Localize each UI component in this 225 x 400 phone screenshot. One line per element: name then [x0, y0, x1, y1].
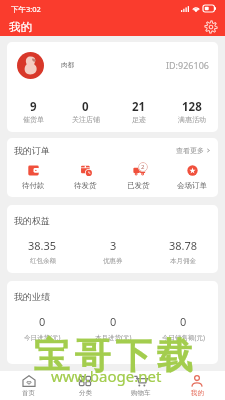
button[interactable]: 我的 [169, 371, 225, 400]
staticText: 128 [182, 99, 202, 115]
staticText: 我的业绩 [14, 291, 50, 302]
button[interactable]: 购物车 [113, 371, 169, 400]
button[interactable]: 查看更多 [176, 146, 211, 155]
button[interactable]: Settings [202, 18, 219, 35]
staticText: 购物车 [131, 389, 151, 397]
button[interactable]: 待付款 [7, 163, 59, 190]
staticText: 会场订单 [177, 181, 207, 190]
staticText: 我的 [9, 20, 32, 34]
staticText: 今日销售额(元) [162, 333, 205, 342]
button[interactable]: 待发货 [59, 163, 112, 190]
button[interactable]: 分类 [57, 371, 113, 400]
staticText: 优惠券 [103, 257, 123, 265]
staticText: www.baoge.net [51, 366, 162, 386]
staticText: 分类 [79, 389, 92, 397]
staticText: 21 [132, 99, 146, 115]
staticText: 我的 [191, 389, 204, 397]
staticText: 0 [82, 99, 89, 115]
staticText: 3 [110, 238, 117, 253]
button[interactable]: 0 [78, 314, 148, 342]
staticText: 关注店铺 [72, 115, 100, 124]
button[interactable]: 0 [148, 314, 218, 342]
staticText: 待发货 [74, 181, 97, 190]
button[interactable]: 21 [112, 88, 165, 132]
staticText: 查看更多 [176, 146, 204, 155]
staticText: ID:926106 [166, 59, 209, 71]
staticText: 待付款 [22, 181, 45, 190]
button[interactable]: 首页 [0, 371, 57, 400]
staticText: 我的权益 [14, 215, 50, 226]
button[interactable]: 128 [165, 88, 218, 132]
staticText: 催货单 [23, 115, 44, 124]
staticText: 38.78 [169, 238, 198, 253]
staticText: 满惠活动 [178, 115, 206, 124]
staticText: 肉都 [61, 61, 74, 69]
staticText: 2 [141, 163, 145, 171]
staticText: 首页 [22, 389, 35, 397]
staticText: 本月佣金 [170, 257, 196, 265]
button[interactable]: 会场订单 [165, 163, 218, 190]
staticText: 我的订单 [14, 145, 50, 156]
staticText: 红包余额 [30, 257, 56, 265]
staticText: 今日进货(元) [24, 333, 61, 342]
button[interactable]: 38.78 [148, 238, 218, 265]
staticText: 本月进货(元) [95, 333, 132, 342]
button[interactable]: 38.35 [7, 238, 78, 265]
staticText: 宝哥下载 [31, 333, 195, 378]
staticText: 0 [110, 314, 117, 329]
button[interactable]: 2 [112, 163, 165, 190]
staticText: 足迹 [132, 115, 146, 124]
staticText: 0 [180, 314, 187, 329]
button[interactable]: 9 [7, 88, 59, 132]
button[interactable]: 0 [7, 314, 78, 342]
staticText: 38.35 [28, 238, 57, 253]
button[interactable]: 0 [59, 88, 112, 132]
staticText: 下午3:02 [11, 4, 41, 14]
staticText: 0 [39, 314, 46, 329]
staticText: 9 [30, 99, 37, 115]
staticText: 已发货 [127, 181, 150, 190]
button[interactable]: 3 [78, 238, 148, 265]
